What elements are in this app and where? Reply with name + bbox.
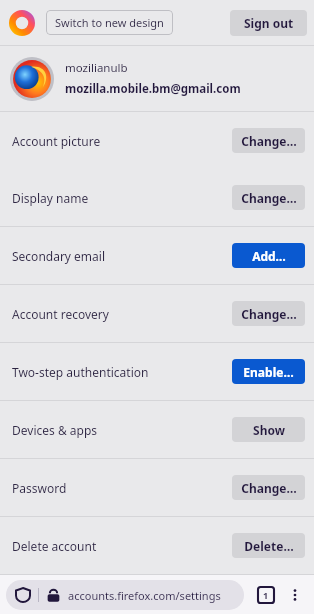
staticText: Sign out [244, 15, 294, 31]
staticText: Account picture [12, 133, 101, 149]
button[interactable]: Password [0, 459, 314, 516]
button[interactable]: Secondary email [0, 227, 314, 284]
button[interactable]: Account picture [0, 112, 314, 169]
staticText: Display name [12, 190, 89, 206]
staticText: Change… [241, 190, 297, 206]
staticText: Enable… [243, 364, 294, 380]
button[interactable]: More options [282, 582, 308, 608]
staticText: accounts.firefox.com/settings [68, 588, 221, 603]
staticText: Change… [241, 306, 297, 322]
staticText: Add… [252, 248, 286, 264]
button[interactable]: Delete… [232, 533, 305, 558]
staticText: 1 [263, 589, 269, 601]
staticText: Change… [241, 480, 297, 496]
button[interactable]: Add… [232, 243, 305, 268]
staticText: Show [253, 422, 285, 438]
button[interactable]: Display name [0, 169, 314, 226]
button[interactable]: Change… [232, 301, 305, 326]
staticText: Delete account [12, 538, 97, 554]
other: Secure connection [47, 589, 60, 602]
staticText: Delete… [244, 538, 294, 554]
staticText: Two-step authentication [12, 364, 149, 380]
button[interactable]: Devices & apps [0, 401, 314, 458]
button[interactable]: Delete account [0, 517, 314, 574]
button[interactable]: Show [232, 417, 305, 442]
other: Tracking protection [16, 588, 30, 602]
staticText: mozilla.mobile.bm@gmail.com [65, 81, 241, 97]
button[interactable]: Tabs [252, 581, 280, 609]
staticText: Account recovery [12, 306, 109, 322]
button[interactable]: Sign out [230, 10, 307, 36]
button[interactable]: Switch to new design [46, 10, 173, 35]
button[interactable]: Two-step authentication [0, 343, 314, 400]
staticText: Password [12, 480, 67, 496]
button[interactable]: Tracking protection [6, 580, 244, 610]
button[interactable]: Account recovery [0, 285, 314, 342]
staticText: Switch to new design [55, 15, 164, 30]
button[interactable]: Firefox [7, 8, 37, 38]
staticText: Secondary email [12, 248, 106, 264]
button[interactable]: Change… [232, 128, 305, 153]
button[interactable]: Change… [232, 475, 305, 500]
staticText: mozilianulb [65, 60, 128, 76]
button[interactable]: Enable… [232, 359, 305, 384]
staticText: Devices & apps [12, 422, 98, 438]
staticText: Change… [241, 133, 297, 149]
button[interactable]: Change… [232, 185, 305, 210]
